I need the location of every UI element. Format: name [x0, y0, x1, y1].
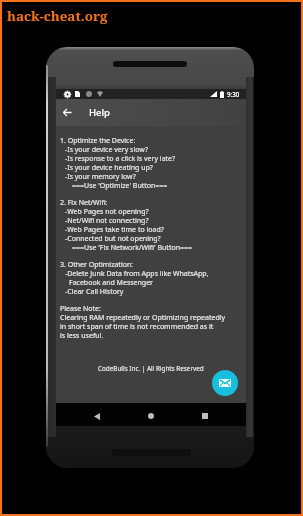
staticText: -Is your device very slow?: [65, 145, 148, 154]
staticText: Clearing RAM repeatedly or Optimizing re…: [60, 313, 226, 322]
button[interactable]: Recent apps: [195, 406, 215, 426]
staticText: Help: [89, 106, 111, 119]
staticText: -Is response to a click is very late?: [65, 154, 176, 163]
staticText: -Web Pages not opening?: [65, 207, 149, 216]
staticText: -Net/Wifi not connecting?: [65, 216, 149, 225]
staticText: ===Use 'Fix Network/Wifi' Button===: [72, 243, 192, 252]
staticText: -Web Pages take time to load?: [65, 225, 164, 234]
button[interactable]: Back: [56, 99, 79, 126]
staticText: CodeBulls Inc. | All Rights Reserved: [98, 364, 204, 373]
staticText: 3. Other Optimization:: [60, 260, 134, 269]
staticText: Facebook and Messenger: [69, 278, 153, 287]
staticText: in short span of time is not recommended…: [60, 322, 214, 331]
staticText: hack-cheat.org: [7, 7, 108, 25]
staticText: is less useful.: [60, 331, 104, 340]
staticText: -Delete Junk Data from Apps like WhatsAp…: [65, 269, 209, 278]
staticText: 9:30: [227, 90, 240, 98]
staticText: 2. Fix Net/Wifi:: [60, 198, 108, 207]
staticText: -Is your memory low?: [65, 172, 136, 181]
staticText: -Clear Call History: [65, 287, 124, 296]
staticText: ===Use 'Optimize' Button===: [72, 181, 168, 190]
staticText: Please Note:: [60, 304, 101, 313]
button[interactable]: Back: [87, 406, 107, 426]
staticText: 1. Optimize the Device:: [60, 136, 136, 145]
staticText: -Is your device heating up?: [65, 163, 153, 172]
button[interactable]: Send email: [212, 370, 238, 396]
staticText: -Connected but not opening?: [65, 234, 161, 243]
button[interactable]: Home: [141, 406, 161, 426]
